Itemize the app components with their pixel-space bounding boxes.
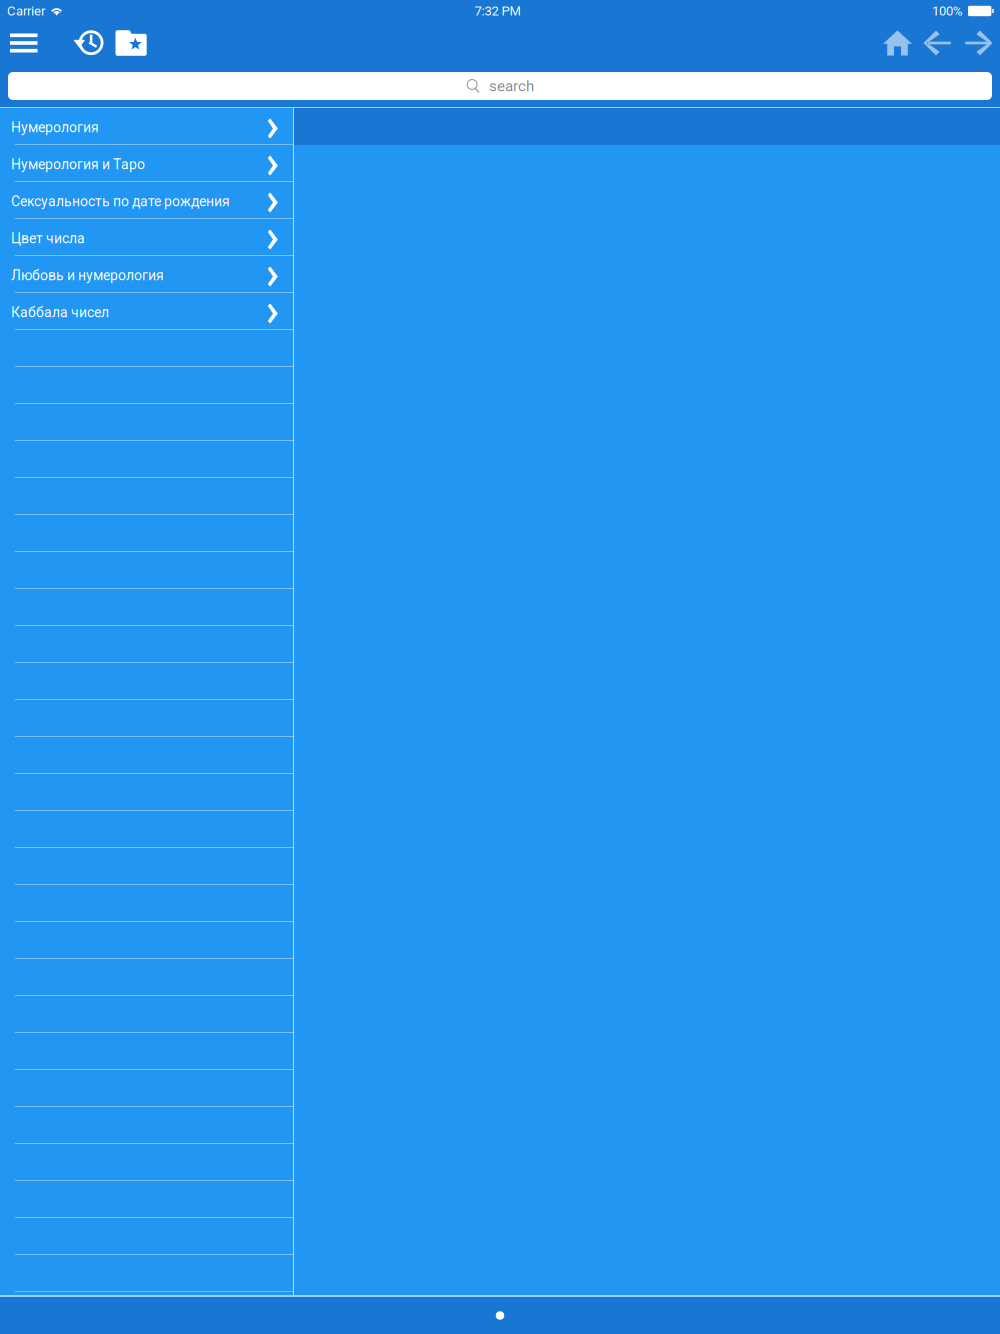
button[interactable]: Сексуальность по дате рождения: [0, 182, 293, 219]
staticText: Carrier: [7, 3, 45, 19]
button[interactable]: Нумерология и Таро: [0, 145, 293, 182]
button[interactable]: Menu: [10, 33, 37, 52]
button[interactable]: Каббала чисел: [0, 293, 293, 330]
button[interactable]: Home: [883, 30, 912, 56]
staticText: 100%: [932, 3, 963, 19]
staticText: Каббала чисел: [11, 304, 109, 321]
staticText: Сексуальность по дате рождения: [11, 193, 230, 210]
button[interactable]: Favorites: [115, 30, 147, 56]
staticText: search: [489, 77, 534, 95]
button[interactable]: Любовь и нумерология: [0, 256, 293, 293]
button[interactable]: search: [8, 72, 992, 100]
button[interactable]: Нумерология: [0, 108, 293, 145]
button[interactable]: History: [73, 27, 104, 58]
button[interactable]: Forward: [964, 30, 990, 56]
staticText: 7:32 PM: [475, 3, 521, 19]
staticText: Цвет числа: [11, 230, 85, 247]
staticText: Нумерология: [11, 119, 99, 136]
staticText: Нумерология и Таро: [11, 156, 145, 173]
button[interactable]: Цвет числа: [0, 219, 293, 256]
staticText: Любовь и нумерология: [11, 267, 164, 284]
button[interactable]: Back: [926, 30, 952, 56]
